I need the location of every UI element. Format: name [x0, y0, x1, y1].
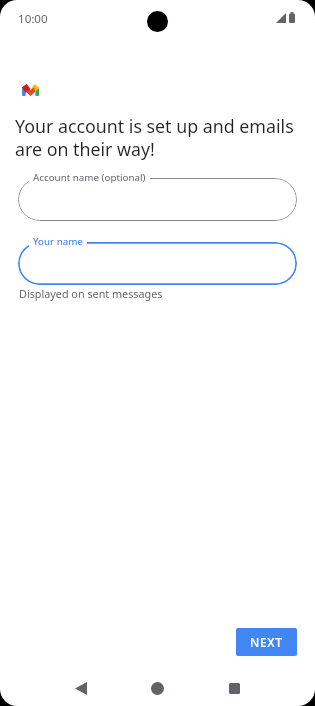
button[interactable]: NEXT — [236, 628, 297, 656]
staticText: Your name — [33, 235, 83, 248]
staticText: NEXT — [250, 634, 283, 650]
button[interactable]: Home — [139, 670, 175, 706]
staticText: 10:00 — [18, 11, 48, 27]
button[interactable]: Back — [63, 670, 99, 706]
staticText: Displayed on sent messages — [19, 286, 163, 301]
staticText: Your account is set up and emails are on… — [15, 114, 303, 161]
button[interactable]: Recent apps — [216, 670, 252, 706]
button[interactable]: Account name (optional) — [18, 178, 297, 221]
button[interactable]: Your name — [18, 242, 297, 285]
staticText: Account name (optional) — [33, 171, 146, 184]
